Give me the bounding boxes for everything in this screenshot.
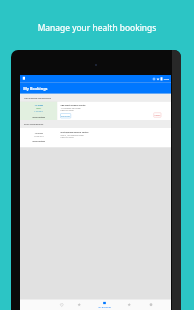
- staticText: TODAY: [36, 107, 41, 109]
- button[interactable]: More: [140, 299, 162, 310]
- staticText: More details: [32, 115, 45, 118]
- staticText: My Bookings: [23, 85, 48, 91]
- staticText: UPCOMING BOOKINGS: [24, 96, 51, 100]
- button[interactable]: Profile: [118, 299, 140, 310]
- staticText: Manage your health bookings: [0, 22, 194, 34]
- staticText: 14 Third Bill Top Street: [60, 106, 81, 109]
- staticText: Cancel: [154, 114, 160, 116]
- button[interactable]: My Bookings: [20, 82, 171, 94]
- staticText: CBD West Medical Centre: [60, 103, 86, 106]
- staticText: Perth WA 6000: [60, 109, 74, 111]
- button[interactable]: 11:10AM: [20, 102, 171, 120]
- staticText: 11:10AM: [34, 103, 43, 106]
- staticText: 10:08: [163, 77, 169, 80]
- staticText: Perth WA 6003: [60, 136, 74, 139]
- staticText: 10 Mar 2017: [34, 135, 44, 137]
- button[interactable]: Directions: [60, 113, 71, 118]
- staticText: More details: [32, 140, 45, 143]
- staticText: My Bookings: [98, 305, 111, 308]
- button[interactable]: 12:20PM: [20, 128, 171, 147]
- staticText: Directions: [61, 114, 70, 117]
- staticText: 12:20PM: [34, 131, 43, 134]
- staticText: Northbridge Medical Centre: [60, 130, 88, 133]
- button[interactable]: Cancel: [153, 112, 161, 117]
- staticText: Shop 2, 156 Newcastle Street: [60, 134, 84, 136]
- button[interactable]: Search: [51, 299, 73, 310]
- button[interactable]: My Bookings: [93, 299, 115, 310]
- staticText: PAST BOOKINGS: [24, 122, 43, 126]
- staticText: 7 Apr 2017: [34, 110, 43, 113]
- button[interactable]: Favourites: [68, 299, 90, 310]
